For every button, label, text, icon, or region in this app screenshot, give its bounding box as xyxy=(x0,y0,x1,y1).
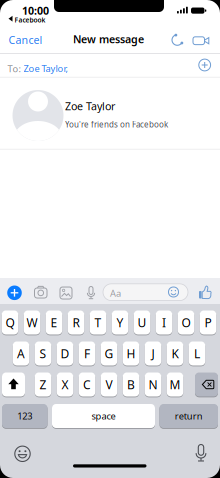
staticText: D xyxy=(60,345,69,361)
button[interactable]: A xyxy=(0,0,220,478)
button[interactable]: K xyxy=(0,0,220,478)
staticText: S xyxy=(39,345,46,361)
staticText: J xyxy=(151,345,154,361)
staticText: Zoe Taylor, xyxy=(23,62,68,75)
button[interactable]: Delete xyxy=(0,0,220,478)
button[interactable]: Add contact xyxy=(0,0,220,478)
staticText: P xyxy=(204,314,211,330)
button[interactable]: H xyxy=(0,0,220,478)
button[interactable]: W xyxy=(0,0,220,478)
button[interactable]: Photos xyxy=(0,0,220,478)
button[interactable]: N xyxy=(0,0,220,478)
staticText: Aa xyxy=(110,287,121,299)
staticText: X xyxy=(61,376,68,392)
button[interactable]: E xyxy=(0,0,220,478)
button[interactable]: Z xyxy=(0,0,220,478)
staticText: F xyxy=(84,345,90,361)
button[interactable]: Cancel xyxy=(0,0,34,14)
staticText: Cancel xyxy=(8,33,42,47)
button[interactable]: Audio call xyxy=(0,0,220,478)
button[interactable]: G xyxy=(0,0,220,478)
button[interactable]: Send a like xyxy=(0,0,220,478)
staticText: Zoe Taylor xyxy=(65,99,115,113)
staticText: Facebook xyxy=(14,16,45,24)
staticText: space xyxy=(91,410,115,422)
staticText: R xyxy=(72,314,79,330)
button[interactable]: J xyxy=(0,0,220,478)
staticText: L xyxy=(194,345,200,361)
button[interactable]: B xyxy=(0,0,220,478)
button[interactable]: space xyxy=(0,0,220,478)
button[interactable]: C xyxy=(0,0,220,478)
button[interactable]: Dictation xyxy=(0,0,220,478)
button[interactable]: O xyxy=(0,0,220,478)
staticText: Y xyxy=(116,314,123,330)
staticText: V xyxy=(105,376,112,392)
staticText: 10:00 xyxy=(22,4,49,18)
staticText: C xyxy=(83,376,91,392)
button[interactable]: D xyxy=(0,0,220,478)
staticText: 123 xyxy=(17,410,32,422)
button[interactable]: P xyxy=(0,0,220,478)
button[interactable]: 123 xyxy=(0,0,220,478)
staticText: New message xyxy=(73,32,144,46)
button[interactable]: M xyxy=(0,0,220,478)
button[interactable]: Q xyxy=(0,0,220,478)
button[interactable]: X xyxy=(0,0,220,478)
button[interactable]: return xyxy=(0,0,220,478)
staticText: To: xyxy=(7,62,21,75)
staticText: U xyxy=(137,314,146,330)
staticText: H xyxy=(126,345,135,361)
staticText: Q xyxy=(5,314,14,330)
button[interactable]: V xyxy=(0,0,220,478)
button[interactable]: S xyxy=(0,0,220,478)
button[interactable]: Shift xyxy=(0,0,220,478)
button[interactable]: U xyxy=(0,0,220,478)
staticText: O xyxy=(181,314,190,330)
button[interactable]: Y xyxy=(0,0,220,478)
button[interactable]: Camera xyxy=(0,0,220,478)
staticText: return xyxy=(175,410,203,422)
button[interactable]: I xyxy=(0,0,220,478)
staticText: M xyxy=(169,376,180,392)
staticText: G xyxy=(104,345,113,361)
staticText: T xyxy=(94,314,101,330)
staticText: You're friends on Facebook xyxy=(65,119,168,130)
staticText: Z xyxy=(39,376,46,392)
staticText: E xyxy=(50,314,57,330)
button[interactable]: Message field xyxy=(0,0,220,478)
staticText: K xyxy=(171,345,178,361)
button[interactable]: Voice message xyxy=(0,0,220,478)
button[interactable]: More actions xyxy=(0,0,220,478)
staticText: B xyxy=(127,376,135,392)
button[interactable]: F xyxy=(0,0,220,478)
button[interactable]: Emoji xyxy=(0,0,220,478)
button[interactable]: T xyxy=(0,0,220,478)
button[interactable]: Video call xyxy=(0,0,220,478)
button[interactable]: Zoe Taylor xyxy=(0,0,220,478)
staticText: I xyxy=(162,314,166,330)
staticText: A xyxy=(17,345,25,361)
button[interactable]: L xyxy=(0,0,220,478)
button[interactable]: R xyxy=(0,0,220,478)
staticText: N xyxy=(148,376,157,392)
staticText: W xyxy=(26,314,37,330)
